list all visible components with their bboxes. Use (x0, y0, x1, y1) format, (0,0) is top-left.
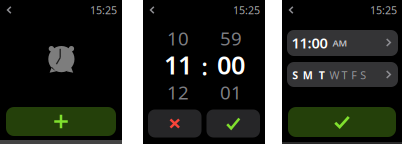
staticText: AM (332, 37, 347, 49)
staticText: S (360, 68, 366, 82)
button[interactable]: Add alarm (6, 107, 116, 136)
button[interactable]: 11:00 (287, 30, 398, 56)
staticText: F (351, 68, 357, 82)
staticText: 15:25 (233, 3, 260, 17)
staticText: 01 (220, 80, 242, 105)
staticText: 11:00 (292, 33, 328, 52)
button[interactable]: Back (282, 1, 300, 19)
staticText: 15:25 (370, 3, 397, 17)
button[interactable]: Back (143, 1, 161, 19)
staticText: W (329, 68, 339, 82)
button[interactable]: S (287, 62, 398, 87)
staticText: T (342, 68, 348, 82)
staticText: 10 (167, 26, 189, 51)
staticText: : (201, 51, 207, 82)
staticText: 00 (217, 48, 245, 81)
staticText: 11 (164, 48, 192, 81)
staticText: 15:25 (90, 3, 117, 17)
button[interactable]: Cancel (148, 109, 201, 137)
staticText: 12 (167, 80, 189, 105)
staticText: M (303, 68, 313, 82)
staticText: S (292, 68, 298, 82)
button[interactable]: Confirm (206, 109, 260, 137)
button[interactable]: Save alarm (288, 107, 396, 137)
staticText: T (319, 68, 325, 82)
button[interactable]: Back (0, 1, 18, 19)
staticText: 59 (220, 26, 242, 51)
